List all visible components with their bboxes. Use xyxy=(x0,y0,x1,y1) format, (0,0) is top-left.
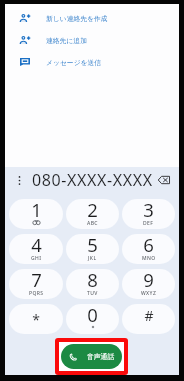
button[interactable]: More options xyxy=(13,174,25,186)
staticText: 5 xyxy=(87,234,98,257)
staticText: 0 xyxy=(87,304,98,327)
staticText: 3 xyxy=(143,199,154,222)
staticText: 6 xyxy=(143,234,154,257)
button[interactable]: 8 xyxy=(66,269,119,299)
button[interactable]: 1 xyxy=(9,199,63,229)
staticText: PQRS xyxy=(29,290,44,297)
button[interactable]: 2 xyxy=(66,199,119,229)
staticText: * xyxy=(32,310,40,329)
staticText: TUV xyxy=(87,290,98,297)
staticText: 7 xyxy=(31,269,42,292)
staticText: GHI xyxy=(31,255,42,262)
staticText: 9 xyxy=(143,269,154,292)
staticText: # xyxy=(144,306,154,325)
button[interactable]: 4 xyxy=(9,234,63,264)
staticText: メッセージを送信 xyxy=(46,58,102,67)
staticText: 2 xyxy=(87,199,98,222)
button[interactable]: 9 xyxy=(122,269,175,299)
button[interactable]: * xyxy=(9,304,63,334)
button[interactable]: # xyxy=(122,304,175,334)
staticText: ABC xyxy=(87,220,98,227)
staticText: 8 xyxy=(87,269,98,292)
staticText: WXYZ xyxy=(141,290,157,297)
staticText: 4 xyxy=(31,234,42,257)
staticText: 音声通話 xyxy=(87,352,115,361)
button[interactable]: 0 xyxy=(66,304,119,334)
button[interactable]: メッセージを送信 xyxy=(5,51,179,73)
button[interactable]: 音声通話 xyxy=(61,344,122,369)
staticText: 1 xyxy=(31,199,42,222)
button[interactable]: 連絡先に追加 xyxy=(5,29,179,51)
button[interactable]: 新しい連絡先を作成 xyxy=(5,7,179,29)
staticText: JKL xyxy=(88,255,97,262)
staticText: 新しい連絡先を作成 xyxy=(46,14,108,23)
button[interactable]: 3 xyxy=(122,199,175,229)
staticText: DEF xyxy=(143,220,154,227)
staticText: MNO xyxy=(142,255,156,262)
button[interactable]: 5 xyxy=(66,234,119,264)
button[interactable]: Backspace xyxy=(157,173,171,187)
button[interactable]: 6 xyxy=(122,234,175,264)
staticText: 080-XXXX-XXXX xyxy=(32,169,153,191)
staticText: 連絡先に追加 xyxy=(46,36,87,45)
button[interactable]: 7 xyxy=(9,269,63,299)
